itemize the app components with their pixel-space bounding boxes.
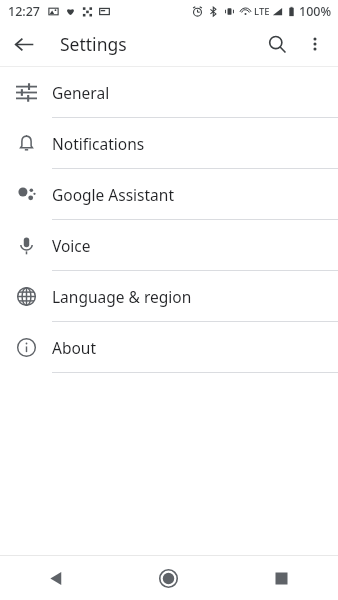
staticText: Notifications (52, 133, 145, 154)
button[interactable]: Language & region (0, 271, 338, 321)
staticText: 100% (299, 3, 332, 20)
button[interactable]: General (0, 67, 338, 117)
staticText: Voice (52, 235, 91, 256)
staticText: Google Assistant (52, 184, 174, 205)
staticText: Settings (60, 32, 127, 56)
button[interactable]: Google Assistant (0, 169, 338, 219)
button[interactable]: Home (112, 556, 225, 600)
button[interactable]: Recent apps (225, 556, 338, 600)
button[interactable]: About (0, 322, 338, 372)
button[interactable]: Search (258, 25, 296, 63)
button[interactable]: Voice (0, 220, 338, 270)
button[interactable]: Back (6, 26, 42, 62)
button[interactable]: Back (0, 556, 112, 600)
staticText: 12:27 (8, 3, 41, 20)
staticText: Language & region (52, 286, 192, 307)
button[interactable]: Notifications (0, 118, 338, 168)
staticText: About (52, 337, 96, 358)
staticText: General (52, 82, 110, 103)
button[interactable]: More options (296, 25, 334, 63)
staticText: LTE (254, 5, 270, 18)
